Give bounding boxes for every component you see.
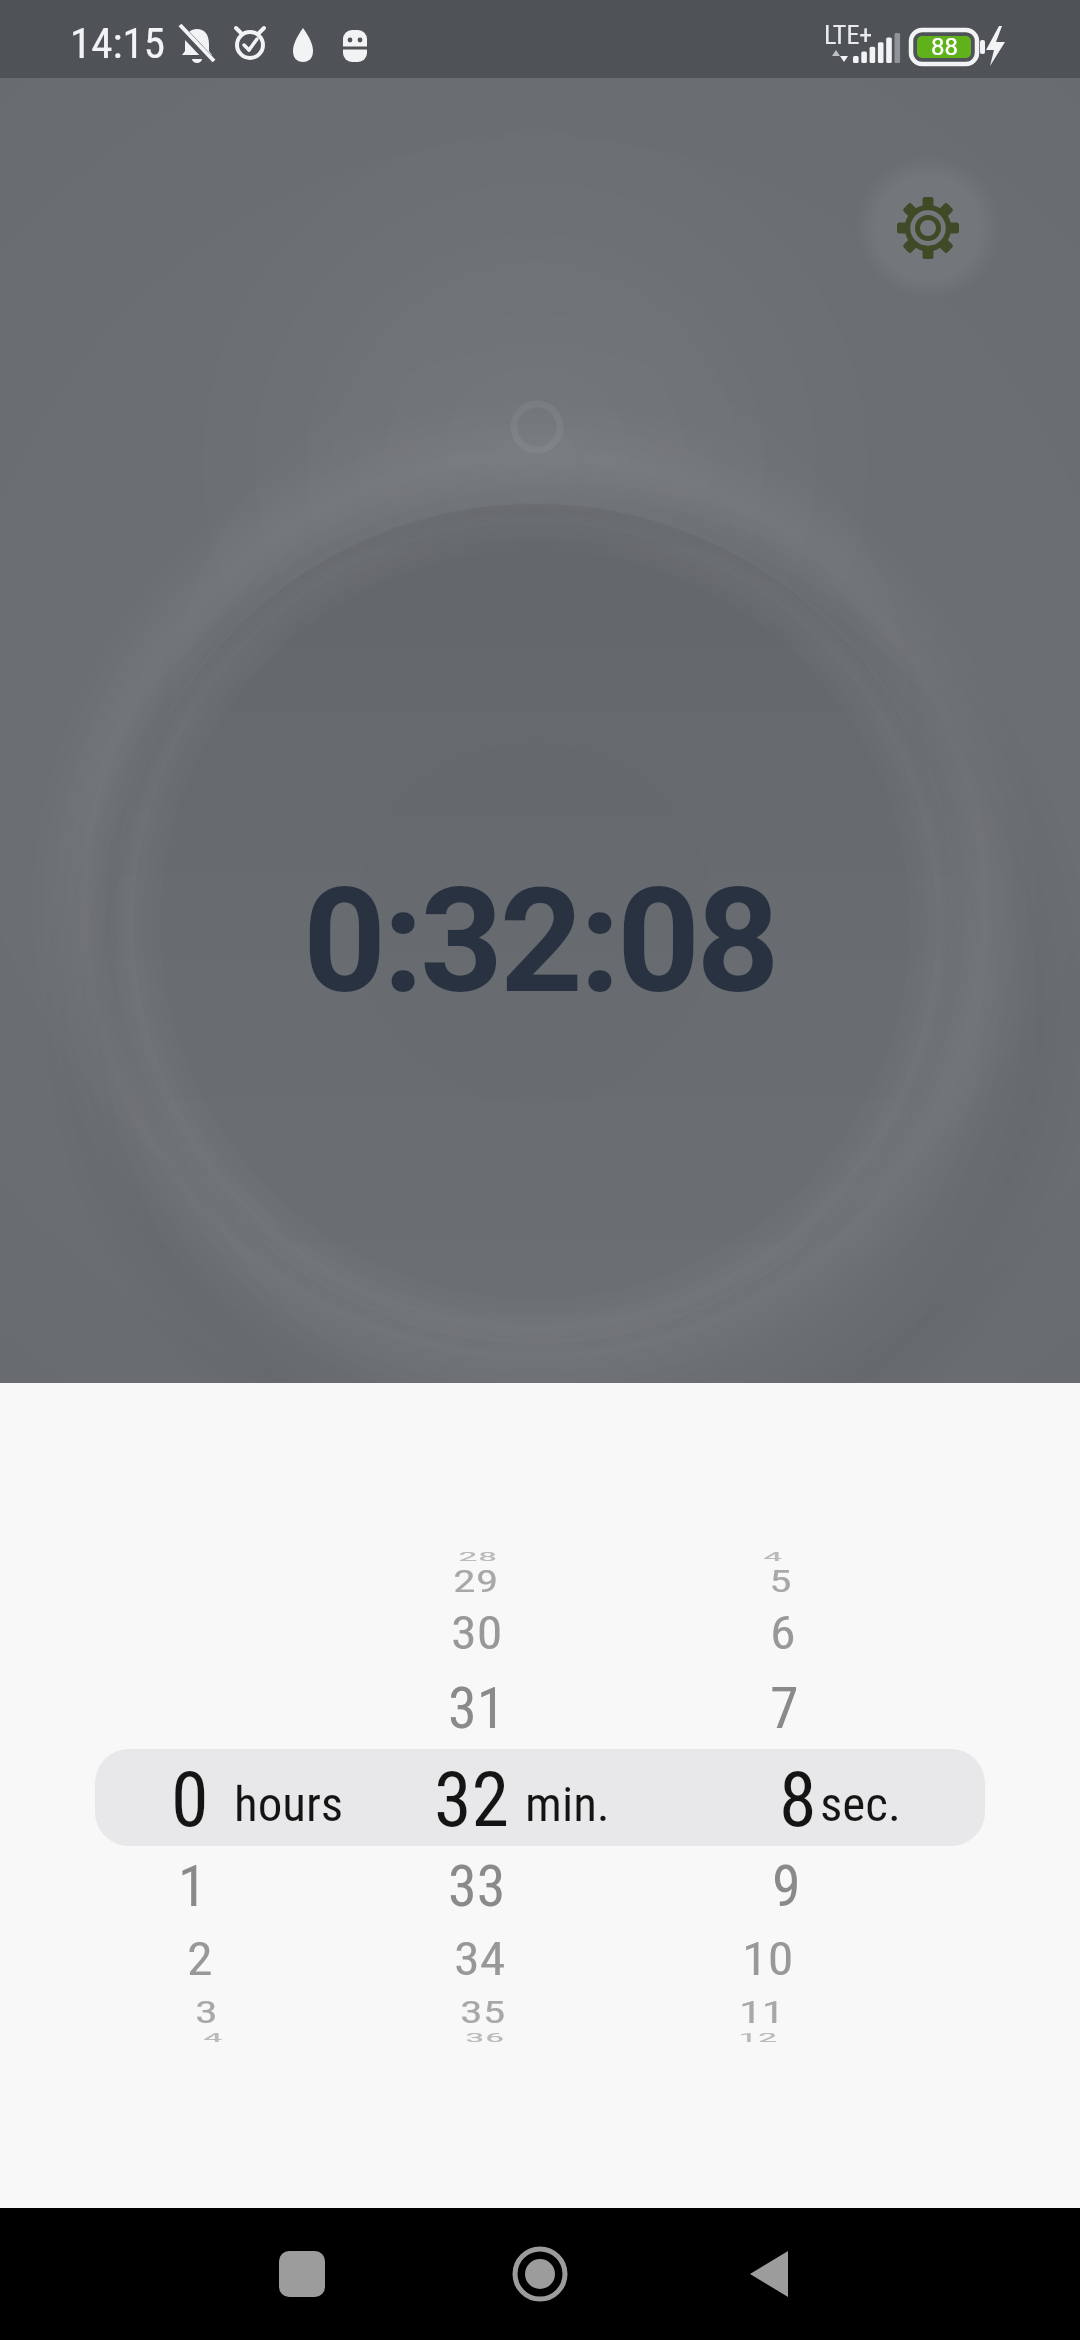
button[interactable] (660, 1523, 910, 2083)
button[interactable] (110, 499, 960, 1349)
staticText: LTE+ (824, 20, 873, 50)
staticText: min. (525, 1776, 610, 1833)
staticText: 88 (931, 33, 958, 61)
staticText: 36 (465, 2029, 505, 2045)
staticText: 6 (770, 1607, 796, 1660)
staticText: 28 (458, 1548, 498, 1564)
staticText: 29 (453, 1563, 499, 1599)
staticText: 4 (203, 2029, 223, 2045)
button[interactable] (360, 1523, 610, 2083)
staticText: 2 (187, 1933, 213, 1986)
staticText: 3 (195, 1994, 218, 2030)
staticText: 32 (434, 1755, 510, 1844)
staticText: 34 (454, 1933, 506, 1986)
staticText: 14:15 (70, 18, 165, 62)
staticText: 10 (742, 1933, 794, 1986)
staticText: 0 (171, 1755, 209, 1844)
staticText: 31 (448, 1674, 506, 1742)
button[interactable] (710, 2214, 830, 2334)
staticText: sec. (820, 1776, 901, 1833)
staticText: 35 (460, 1994, 506, 2030)
staticText: hours (234, 1776, 344, 1833)
staticText: 1 (178, 1852, 207, 1920)
staticText: 12 (738, 2029, 778, 2045)
button[interactable] (858, 158, 998, 298)
staticText: 7 (770, 1674, 799, 1742)
staticText: 8 (779, 1755, 817, 1844)
staticText: 4 (763, 1548, 783, 1564)
staticText: 0:32:08 (303, 856, 777, 1026)
button[interactable] (480, 2214, 600, 2334)
button[interactable] (242, 2214, 362, 2334)
staticText: 9 (772, 1852, 801, 1920)
button[interactable] (95, 1523, 345, 2083)
staticText: 33 (448, 1852, 506, 1920)
staticText: 11 (739, 1994, 785, 2030)
staticText: 5 (769, 1563, 792, 1599)
staticText: 30 (451, 1607, 503, 1660)
